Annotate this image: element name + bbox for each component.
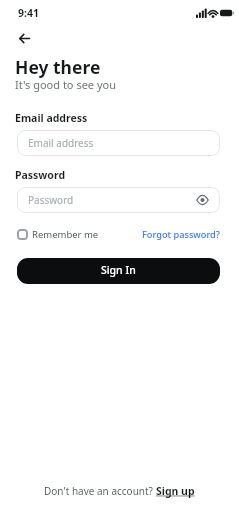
button[interactable]: Sign In (17, 258, 220, 284)
staticText: 9:41 (18, 6, 39, 20)
staticText: It's good to see you (15, 77, 116, 92)
staticText: Hey there (15, 55, 101, 79)
staticText: Remember me (32, 228, 99, 240)
staticText: Email address (15, 111, 88, 125)
button[interactable]: Forgot password? (142, 228, 220, 240)
button[interactable] (17, 229, 28, 240)
button[interactable] (13, 30, 35, 46)
button[interactable]: Don't have an account? (44, 484, 195, 498)
staticText: Password (28, 193, 74, 207)
staticText: Email address (28, 136, 94, 150)
staticText: Sign In (101, 263, 136, 277)
button[interactable]: Email address (17, 130, 220, 156)
staticText: Sign up (156, 484, 195, 498)
button[interactable]: Password (17, 187, 220, 213)
staticText: Don't have an account? (44, 484, 156, 498)
staticText: Password (15, 168, 66, 182)
